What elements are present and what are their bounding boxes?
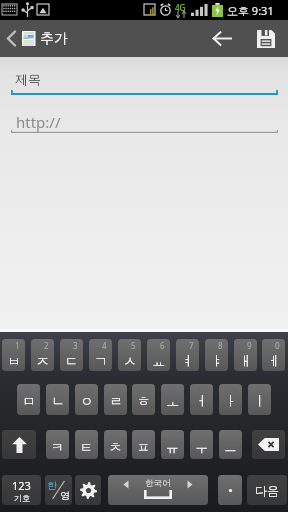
staticText: ㄹ — [109, 393, 123, 410]
staticText: 한국어 — [145, 478, 171, 489]
button[interactable]: ㅛ — [147, 339, 170, 371]
staticText: ㅁ — [22, 393, 36, 410]
button[interactable]: ㅔ — [262, 339, 285, 371]
button[interactable]: ㅋ — [46, 430, 69, 459]
button[interactable]: ㄴ — [46, 384, 69, 415]
button[interactable]: ㅏ — [219, 384, 242, 415]
staticText: ㅓ — [195, 393, 209, 410]
button[interactable]: Back — [200, 20, 244, 57]
button[interactable]: Navigate up — [0, 20, 38, 57]
staticText: ㄴ — [51, 393, 65, 410]
button[interactable]: ㅣ — [248, 384, 271, 415]
staticText: ㅔ — [267, 353, 281, 370]
staticText: 오후 9:31 — [227, 3, 274, 18]
staticText: ㅅ — [123, 353, 137, 370]
button[interactable]: ㅇ — [75, 384, 98, 415]
button[interactable]: ㅊ — [104, 430, 127, 459]
staticText: 4 — [102, 340, 107, 351]
button[interactable]: ㄹ — [104, 384, 127, 415]
staticText: 한 — [47, 479, 57, 492]
button[interactable]: ㅍ — [132, 430, 155, 459]
button[interactable]: Language toggle — [45, 475, 72, 505]
staticText: ㅎ — [137, 393, 151, 410]
button[interactable]: ㅅ — [118, 339, 141, 371]
staticText: 기호 — [14, 493, 30, 503]
button[interactable]: 다음 — [247, 475, 287, 505]
button[interactable]: ㅂ — [2, 339, 25, 371]
staticText: 4G — [175, 2, 186, 13]
staticText: ㅇ — [80, 393, 94, 410]
staticText: 추가 — [40, 30, 68, 48]
button[interactable]: ㄷ — [60, 339, 83, 371]
staticText: ㅐ — [239, 353, 253, 370]
staticText: ㅊ — [109, 439, 122, 455]
button[interactable]: ㅕ — [176, 339, 199, 371]
staticText: ㅛ — [152, 353, 166, 370]
staticText: 다음 — [255, 483, 279, 498]
staticText: 5 — [131, 340, 136, 351]
button[interactable]: ㅜ — [190, 430, 213, 459]
staticText: 7 — [189, 340, 194, 351]
staticText: ㅍ — [137, 439, 150, 455]
button[interactable]: ㅈ — [31, 339, 54, 371]
button[interactable]: ㅎ — [132, 384, 155, 415]
staticText: ㅌ — [80, 439, 93, 455]
staticText: ㅑ — [210, 353, 224, 370]
staticText: ㄱ — [94, 353, 108, 370]
button[interactable]: Settings — [75, 475, 101, 505]
staticText: 제목 — [15, 71, 41, 87]
staticText: 0 — [275, 340, 280, 351]
button[interactable]: Shift — [2, 430, 36, 459]
staticText: 8 — [218, 340, 223, 351]
button[interactable]: ㅁ — [17, 384, 40, 415]
staticText: ㅡ — [224, 439, 237, 455]
staticText: 9 — [247, 340, 252, 351]
button[interactable]: ㅓ — [190, 384, 213, 415]
button[interactable]: ㅠ — [161, 430, 184, 459]
staticText: 2 — [44, 340, 49, 351]
button[interactable]: ㅑ — [205, 339, 228, 371]
staticText: ㅠ — [166, 439, 179, 455]
staticText: ㅜ — [195, 439, 208, 455]
button[interactable]: Backspace — [252, 430, 285, 459]
staticText: 6 — [160, 340, 165, 351]
button[interactable]: ㅌ — [75, 430, 98, 459]
button[interactable]: Save — [244, 20, 288, 57]
button[interactable]: ㅡ — [219, 430, 242, 459]
staticText: ㅕ — [181, 353, 195, 370]
staticText: ㅈ — [36, 353, 50, 370]
staticText: ㅗ — [166, 393, 180, 410]
staticText: ㄷ — [65, 353, 79, 370]
staticText: ㅋ — [51, 439, 64, 455]
staticText: 123 — [12, 478, 31, 493]
button[interactable]: Symbols — [2, 475, 41, 505]
button[interactable]: ㅗ — [161, 384, 184, 415]
button[interactable]: Space — [108, 475, 208, 505]
staticText: 영 — [60, 489, 70, 502]
staticText: ㅏ — [224, 393, 238, 410]
button[interactable]: ㄱ — [89, 339, 112, 371]
staticText: ㅂ — [7, 353, 21, 370]
button[interactable]: ㅐ — [234, 339, 257, 371]
staticText: ㅣ — [253, 393, 267, 410]
staticText: http:// — [16, 112, 61, 132]
staticText: 3 — [73, 340, 78, 351]
staticText: 1 — [15, 340, 20, 351]
button[interactable]: Period — [218, 475, 242, 505]
